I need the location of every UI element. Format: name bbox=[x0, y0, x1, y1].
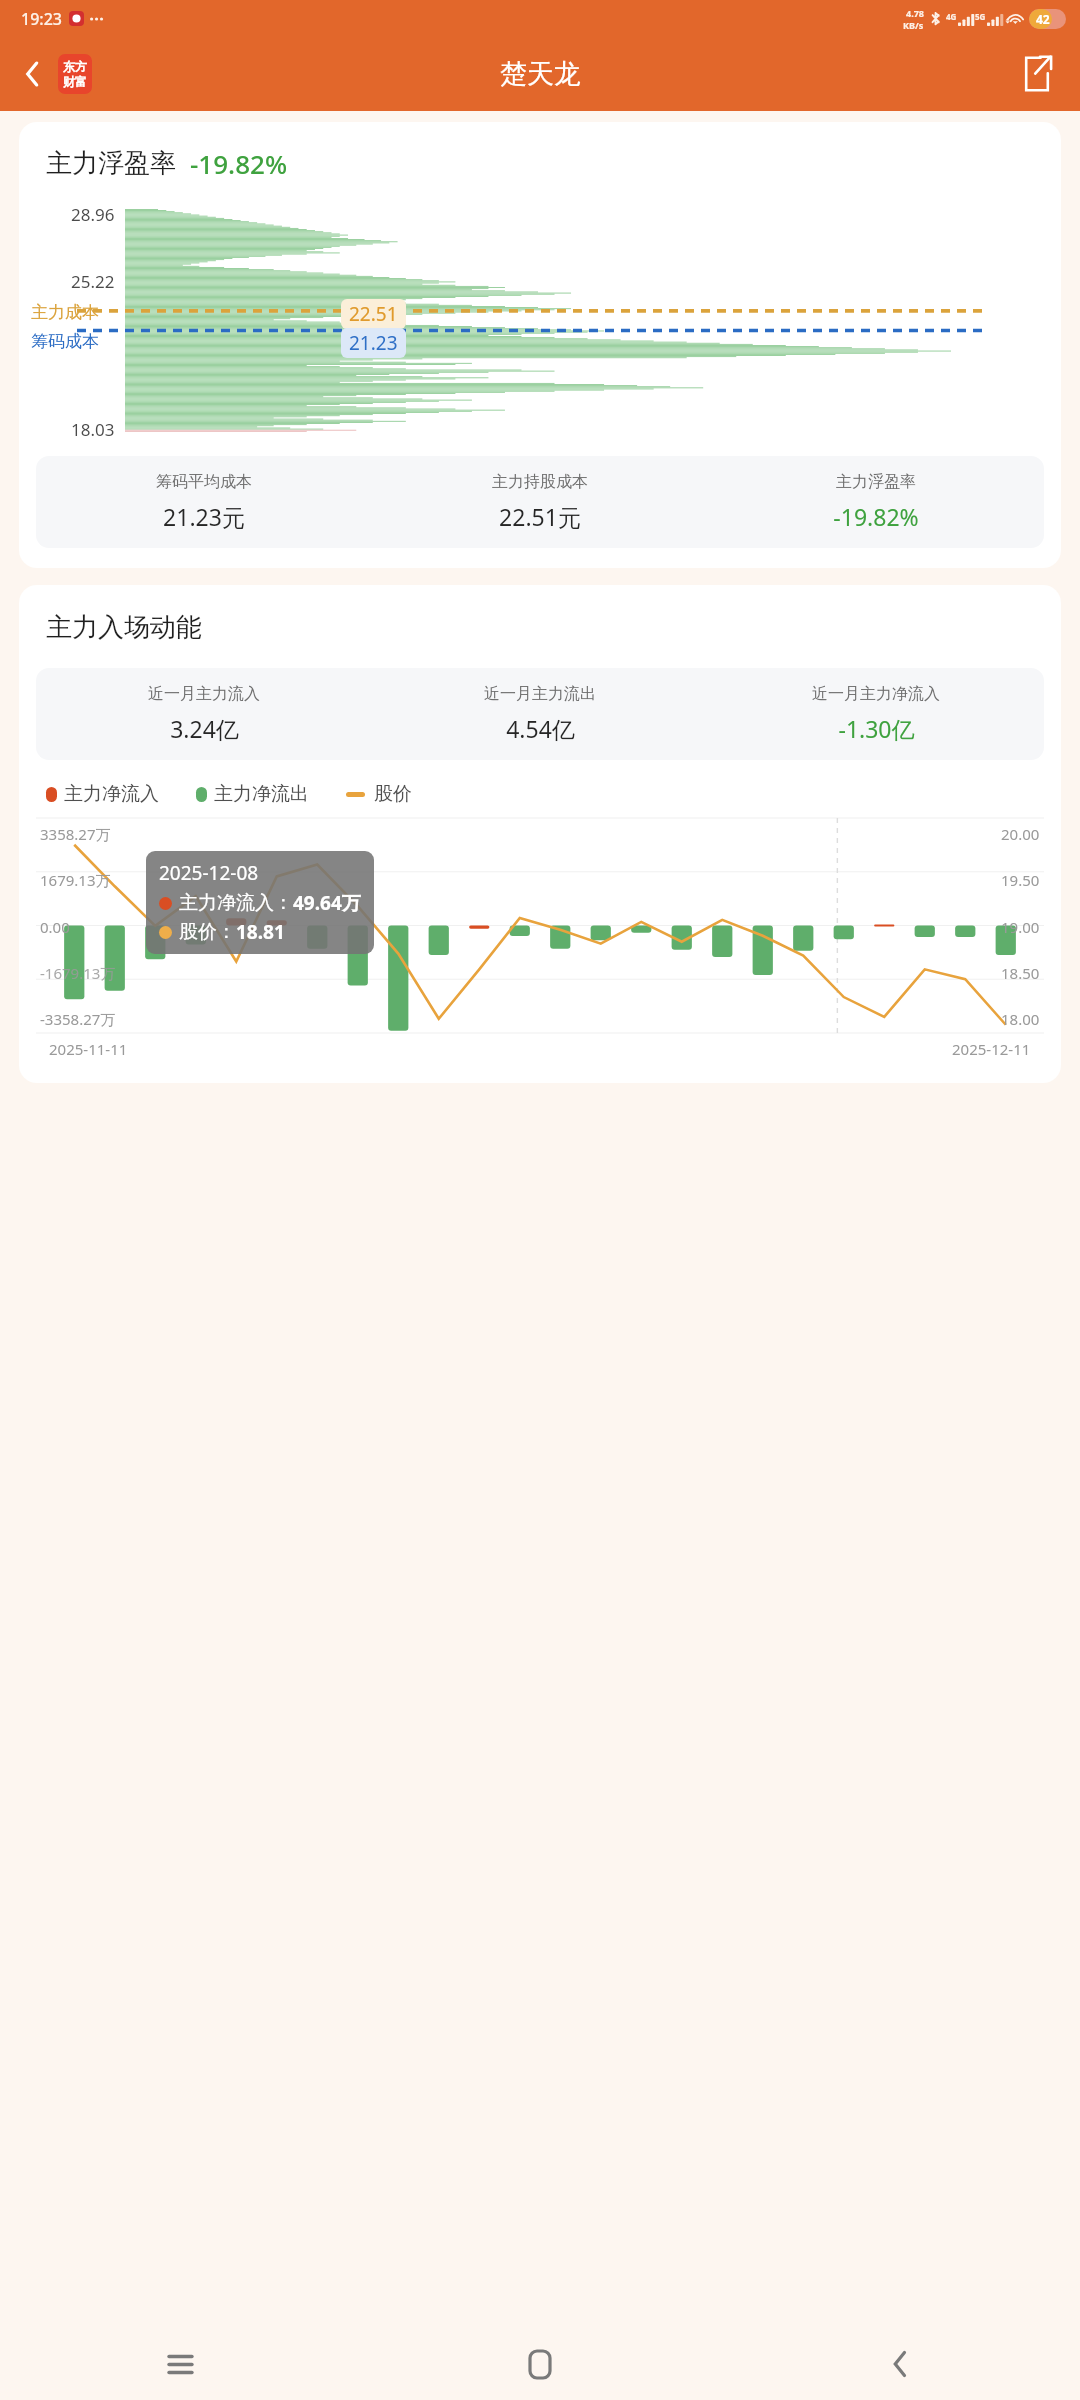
staticText: 22.51 bbox=[349, 301, 398, 327]
staticText: 3.24亿 bbox=[170, 713, 239, 744]
staticText: -19.82% bbox=[190, 146, 288, 181]
staticText: 18.50 bbox=[1001, 963, 1040, 983]
staticText: 19.00 bbox=[1001, 917, 1040, 937]
staticText: 主力浮盈率 bbox=[46, 147, 176, 180]
staticText: 主力持股成本 bbox=[492, 472, 588, 492]
staticText: 股价 bbox=[374, 782, 412, 806]
staticText: 筹码成本 bbox=[31, 331, 99, 352]
staticText: 19:23 bbox=[21, 8, 62, 30]
staticText: 主力净流出 bbox=[214, 782, 309, 806]
staticText: 4.78 bbox=[906, 7, 924, 19]
staticText: 18.81 bbox=[236, 919, 285, 945]
button[interactable]: 东方财富 bbox=[58, 54, 92, 94]
staticText: -19.82% bbox=[833, 501, 919, 532]
staticText: 20.00 bbox=[1001, 824, 1040, 844]
staticText: 42 bbox=[1036, 11, 1050, 27]
staticText: 5G bbox=[975, 11, 986, 22]
staticText: 股价： bbox=[179, 920, 236, 944]
staticText: 18.03 bbox=[71, 418, 115, 441]
staticText: -1.30亿 bbox=[838, 713, 915, 744]
button[interactable]: Back bbox=[10, 52, 54, 96]
staticText: 28.96 bbox=[71, 203, 115, 226]
staticText: 主力浮盈率 bbox=[836, 472, 916, 492]
staticText: 0.00 bbox=[40, 917, 70, 937]
staticText: 财富 bbox=[63, 74, 87, 89]
staticText: 主力净流入 bbox=[64, 782, 159, 806]
button[interactable]: Home bbox=[360, 2328, 720, 2400]
staticText: 4G bbox=[946, 11, 957, 22]
staticText: 4.54亿 bbox=[506, 713, 575, 744]
button[interactable]: Back bbox=[720, 2328, 1080, 2400]
staticText: 楚天龙 bbox=[500, 57, 581, 91]
staticText: -1679.13万 bbox=[40, 963, 116, 983]
staticText: 2025-12-11 bbox=[952, 1039, 1031, 1059]
staticText: 2025-11-11 bbox=[49, 1039, 128, 1059]
staticText: 2025-12-08 bbox=[159, 860, 259, 886]
staticText: 18.00 bbox=[1001, 1009, 1040, 1029]
staticText: 21.23 bbox=[349, 330, 398, 356]
staticText: 21.23元 bbox=[163, 501, 245, 532]
staticText: 近一月主力流入 bbox=[148, 684, 260, 704]
staticText: 1679.13万 bbox=[40, 870, 111, 890]
button[interactable]: Recents bbox=[0, 2328, 360, 2400]
staticText: 东方 bbox=[63, 59, 87, 74]
staticText: 25.22 bbox=[71, 270, 115, 293]
staticText: 19.50 bbox=[1001, 870, 1040, 890]
staticText: -3358.27万 bbox=[40, 1009, 116, 1029]
staticText: 近一月主力净流入 bbox=[812, 684, 940, 704]
staticText: KB/s bbox=[903, 19, 924, 31]
button[interactable]: Share bbox=[1014, 51, 1060, 97]
staticText: 主力入场动能 bbox=[46, 611, 202, 644]
staticText: 近一月主力流出 bbox=[484, 684, 596, 704]
staticText: 49.64万 bbox=[293, 890, 361, 916]
staticText: 主力净流入： bbox=[179, 891, 293, 915]
staticText: 22.51元 bbox=[499, 501, 581, 532]
staticText: 主力成本 bbox=[31, 302, 99, 323]
staticText: 3358.27万 bbox=[40, 824, 111, 844]
staticText: 筹码平均成本 bbox=[156, 472, 252, 492]
